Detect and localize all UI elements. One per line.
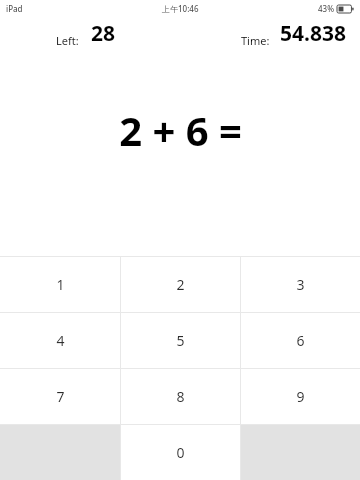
button[interactable]: Key 8: [121, 369, 240, 424]
staticText: 6: [296, 331, 305, 350]
staticText: 1: [56, 275, 65, 294]
button[interactable]: Key 3: [241, 257, 360, 312]
other: Battery 43 percent: [337, 5, 354, 13]
staticText: Time:: [241, 33, 270, 48]
button[interactable]: Key 9: [241, 369, 360, 424]
button[interactable]: Key 2: [121, 257, 240, 312]
staticText: 2 + 6 =: [119, 103, 242, 157]
staticText: iPad: [6, 3, 23, 14]
staticText: 7: [56, 387, 65, 406]
staticText: 4: [56, 331, 65, 350]
staticText: 9: [296, 387, 305, 406]
button[interactable]: Key 5: [121, 313, 240, 368]
staticText: 43%: [318, 3, 334, 14]
staticText: 0: [176, 443, 185, 462]
staticText: 2: [176, 275, 185, 294]
staticText: 28: [91, 19, 116, 48]
button[interactable]: Key 0: [121, 425, 240, 480]
button[interactable]: Key 7: [0, 369, 120, 424]
staticText: Left:: [56, 33, 79, 48]
button[interactable]: Key 4: [0, 313, 120, 368]
staticText: 54.838: [280, 19, 346, 48]
staticText: 8: [176, 387, 185, 406]
staticText: 上午10:46: [162, 3, 199, 14]
staticText: 3: [296, 275, 305, 294]
button[interactable]: Key 6: [241, 313, 360, 368]
button[interactable]: Key 1: [0, 257, 120, 312]
staticText: 5: [176, 331, 185, 350]
